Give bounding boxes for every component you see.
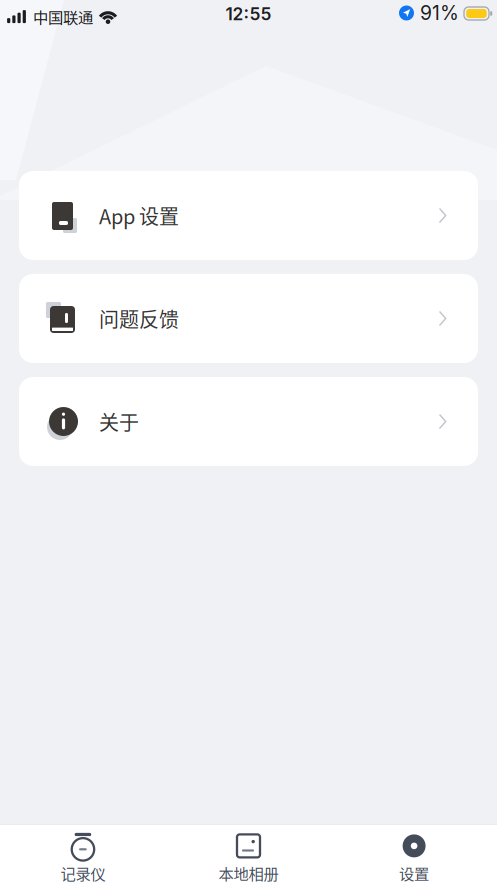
- button[interactable]: 本地相册: [166, 824, 331, 883]
- staticText: 12:55: [225, 3, 271, 24]
- staticText: 关于: [99, 407, 139, 436]
- staticText: 91%: [420, 1, 459, 25]
- staticText: App 设置: [99, 201, 179, 230]
- button[interactable]: 问题反馈: [19, 274, 478, 363]
- staticText: 中国联通: [33, 5, 93, 28]
- button[interactable]: App 设置: [19, 171, 478, 260]
- button[interactable]: 关于: [19, 377, 478, 466]
- staticText: 问题反馈: [99, 304, 179, 333]
- staticText: 设置: [399, 862, 429, 883]
- staticText: 本地相册: [218, 862, 278, 883]
- staticText: 记录仪: [60, 862, 105, 883]
- button[interactable]: 设置: [331, 824, 497, 883]
- button[interactable]: 记录仪: [0, 824, 166, 883]
